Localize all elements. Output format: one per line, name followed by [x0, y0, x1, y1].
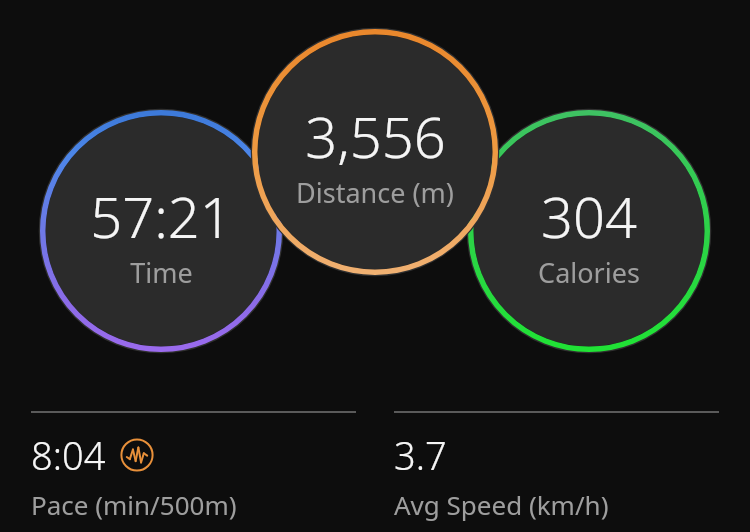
other: Pace source: heart rate sensor: [120, 438, 154, 472]
staticText: Avg Speed (km/h): [394, 487, 609, 522]
staticText: 8:04: [31, 429, 106, 481]
staticText: Pace (min/500m): [31, 487, 237, 522]
button[interactable]: 57:21: [40, 110, 282, 352]
staticText: Time: [130, 254, 193, 291]
staticText: Calories: [538, 254, 640, 291]
button[interactable]: 3,556: [252, 29, 498, 275]
staticText: 57:21: [90, 178, 232, 254]
staticText: 3,556: [305, 98, 446, 174]
staticText: Distance (m): [296, 174, 454, 211]
button[interactable]: 3.7: [375, 411, 750, 522]
staticText: 3.7: [394, 429, 447, 481]
staticText: 304: [541, 178, 637, 254]
button[interactable]: 8:04: [0, 411, 375, 522]
button[interactable]: 304: [468, 110, 710, 352]
